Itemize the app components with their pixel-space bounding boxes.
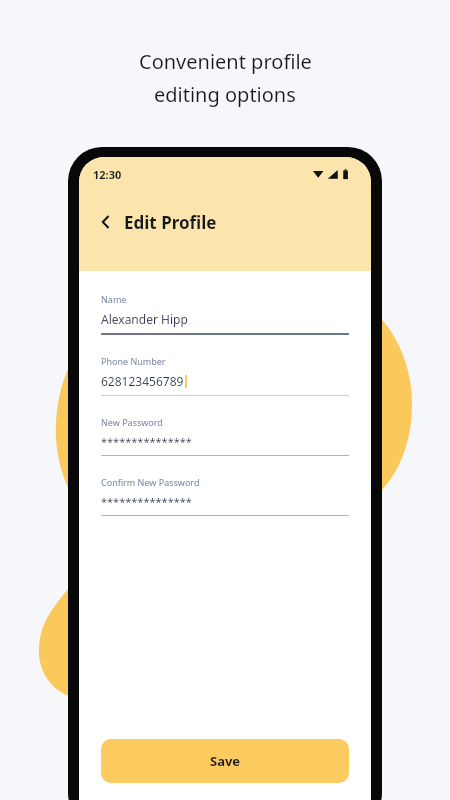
- staticText: ***************: [101, 494, 192, 509]
- staticText: ***************: [101, 434, 192, 449]
- button[interactable]: Confirm New Password: [101, 476, 349, 516]
- button[interactable]: Phone Number: [101, 355, 349, 396]
- staticText: Confirm New Password: [101, 476, 200, 488]
- staticText: New Password: [101, 416, 163, 428]
- staticText: editing options: [154, 81, 296, 108]
- staticText: 628123456789: [101, 373, 184, 389]
- staticText: Alexander Hipp: [101, 311, 188, 327]
- staticText: 12:30: [93, 167, 122, 182]
- button[interactable]: Save: [101, 739, 349, 783]
- staticText: Convenient profile: [139, 48, 312, 75]
- staticText: Name: [101, 293, 127, 305]
- button[interactable]: Name: [101, 293, 349, 335]
- staticText: Phone Number: [101, 355, 166, 367]
- button[interactable]: New Password: [101, 416, 349, 456]
- button[interactable]: Back: [93, 209, 119, 235]
- staticText: Edit Profile: [124, 211, 217, 234]
- staticText: Save: [210, 752, 241, 770]
